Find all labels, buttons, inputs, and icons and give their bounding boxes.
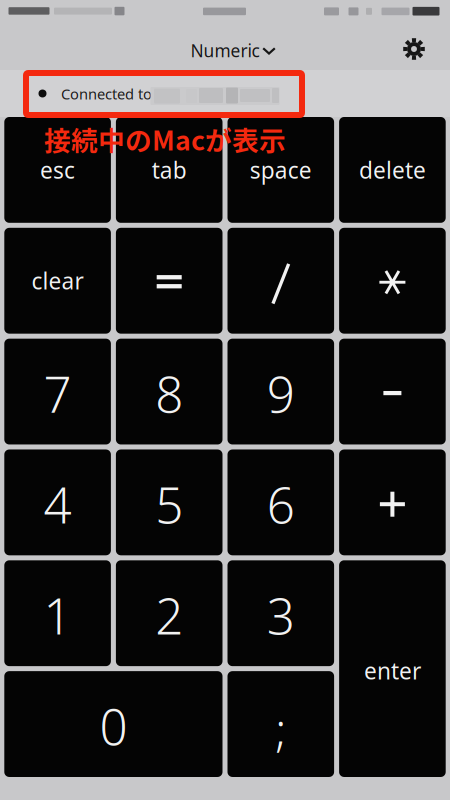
staticText: 3 — [267, 582, 295, 648]
button[interactable] — [227, 228, 334, 334]
button[interactable]: 9 — [227, 339, 334, 444]
staticText: clear — [32, 266, 84, 296]
staticText: esc — [40, 155, 75, 185]
staticText: tab — [152, 155, 187, 185]
staticText: Connected to — [61, 84, 152, 103]
button[interactable]: Numeric — [160, 29, 290, 69]
staticText: 5 — [155, 472, 183, 537]
button[interactable]: 6 — [227, 449, 334, 555]
button[interactable]: 7 — [4, 339, 111, 444]
button[interactable]: 4 — [4, 449, 111, 555]
button[interactable]: tab — [116, 117, 222, 223]
staticText: space — [250, 155, 312, 185]
button[interactable]: 8 — [116, 339, 222, 444]
staticText: ; — [275, 699, 286, 759]
button[interactable]: ; — [227, 671, 334, 777]
button[interactable]: Settings — [392, 29, 436, 69]
button[interactable]: enter — [339, 560, 446, 777]
staticText: 6 — [267, 472, 295, 537]
staticText: enter — [364, 656, 421, 686]
button[interactable] — [339, 339, 446, 444]
staticText: delete — [359, 155, 426, 185]
button[interactable]: 3 — [227, 560, 334, 666]
staticText: 2 — [155, 582, 183, 648]
button[interactable]: clear — [4, 228, 111, 334]
staticText: 接続中のMacが表示 — [44, 119, 286, 158]
button[interactable]: esc — [4, 117, 111, 223]
button[interactable] — [339, 228, 446, 334]
button[interactable]: 2 — [116, 560, 222, 666]
button[interactable]: delete — [339, 117, 446, 223]
staticText: Numeric — [190, 39, 259, 62]
staticText: 0 — [99, 693, 127, 759]
staticText: 8 — [155, 361, 183, 426]
staticText: 7 — [44, 361, 72, 426]
button[interactable] — [116, 228, 222, 334]
button[interactable]: 1 — [4, 560, 111, 666]
staticText: 4 — [44, 472, 72, 537]
staticText: 1 — [44, 582, 72, 648]
staticText: 9 — [267, 361, 295, 426]
button[interactable]: 0 — [4, 671, 222, 777]
button[interactable]: space — [227, 117, 334, 223]
button[interactable] — [339, 449, 446, 555]
button[interactable]: 5 — [116, 449, 222, 555]
